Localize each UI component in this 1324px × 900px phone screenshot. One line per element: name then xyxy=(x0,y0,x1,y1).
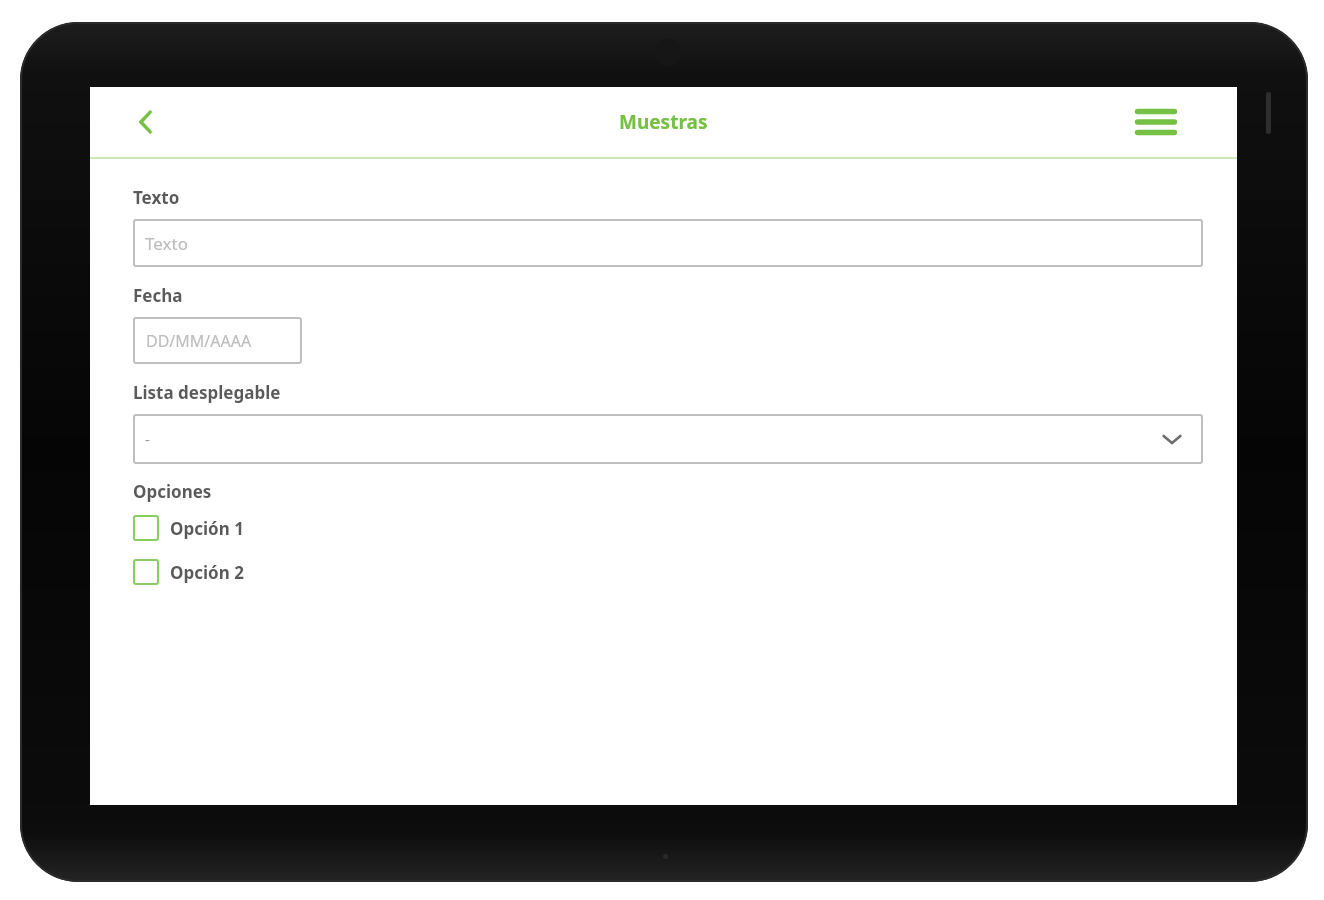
button[interactable]: Menu xyxy=(1127,93,1185,151)
staticText: Texto xyxy=(133,186,180,209)
button[interactable]: Back xyxy=(118,94,174,150)
staticText: Lista desplegable xyxy=(133,381,281,404)
button[interactable]: DD/MM/AAAA xyxy=(133,317,302,364)
staticText: Opciones xyxy=(133,480,212,503)
staticText: DD/MM/AAAA xyxy=(146,330,252,352)
staticText: Texto xyxy=(145,232,188,255)
staticText: Muestras xyxy=(619,109,708,135)
staticText: Fecha xyxy=(133,284,183,307)
staticText: - xyxy=(145,429,150,449)
button[interactable]: Opción 1 xyxy=(133,513,244,543)
button[interactable]: - xyxy=(133,414,1203,464)
staticText: Opción 1 xyxy=(170,517,244,540)
staticText: Opción 2 xyxy=(170,561,244,584)
button[interactable]: Texto xyxy=(133,219,1203,267)
button[interactable]: Opción 2 xyxy=(133,557,244,587)
